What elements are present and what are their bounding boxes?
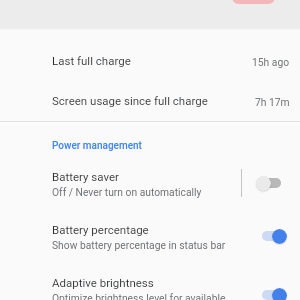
button[interactable]: Battery saver, off [252,156,290,209]
staticText: 7h 17m [255,96,290,108]
staticText: Screen usage since full charge [52,94,255,107]
button[interactable]: Adaptive brightness, on [252,268,290,300]
staticText: Show battery percentage in status bar [52,239,226,251]
button[interactable]: Screen usage since full charge [0,80,300,120]
staticText: 15h ago [252,56,290,68]
staticText: Power management [52,140,142,152]
button[interactable]: Battery usage [232,0,275,4]
staticText: Adaptive brightness [52,276,154,289]
staticText: Last full charge [52,54,252,67]
button[interactable]: Battery percentage, on [252,209,290,262]
button[interactable]: Battery saver [0,156,300,209]
button[interactable]: Battery percentage [0,209,300,262]
button[interactable]: Adaptive brightness [0,262,300,300]
staticText: Off / Never turn on automatically [52,186,202,198]
button[interactable]: Last full charge [0,40,300,80]
staticText: Battery percentage [52,223,149,236]
staticText: Optimize brightness level for available [52,292,226,300]
staticText: Battery saver [52,170,119,183]
